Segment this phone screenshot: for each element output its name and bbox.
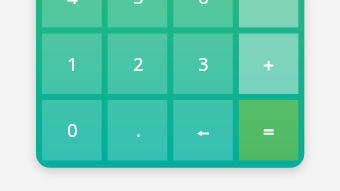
staticText: 6 [198, 0, 209, 10]
button[interactable]: 6 [173, 0, 233, 11]
staticText: 5 [133, 0, 144, 10]
button[interactable]: 3 [173, 34, 233, 94]
button[interactable]: 2 [108, 34, 168, 94]
staticText: 1 [67, 52, 78, 77]
button[interactable]: Backspace [173, 100, 233, 160]
button[interactable]: 5 [108, 0, 168, 11]
staticText: . [136, 118, 141, 143]
staticText: 2 [133, 52, 144, 77]
staticText: 4 [67, 0, 78, 10]
button[interactable]: . [108, 100, 168, 160]
button[interactable]: Plus [239, 34, 299, 94]
button[interactable]: Equals [239, 100, 299, 160]
button[interactable]: 4 [42, 0, 102, 11]
button[interactable]: 1 [42, 34, 102, 94]
button[interactable]: 0 [42, 100, 102, 160]
staticText: 3 [198, 52, 209, 77]
staticText: 0 [67, 118, 78, 143]
button[interactable]: Minus [239, 0, 299, 11]
